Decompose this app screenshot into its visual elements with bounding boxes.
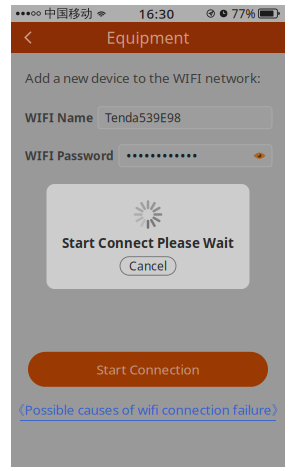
- staticText: 《Possible causes of wifi connection fail…: [11, 401, 284, 419]
- button[interactable]: Cancel: [120, 257, 176, 275]
- staticText: 77%: [231, 5, 255, 21]
- button[interactable]: Start Connection: [11, 352, 285, 387]
- button[interactable]: 《Possible causes of wifi connection fail…: [11, 387, 284, 421]
- staticText: WIFI Name: [25, 110, 93, 126]
- staticText: Cancel: [129, 258, 167, 274]
- button[interactable]: Back: [11, 22, 46, 53]
- staticText: 中国移动: [44, 6, 92, 21]
- staticText: WIFI Password: [25, 148, 114, 164]
- staticText: Tenda539E98: [105, 110, 181, 126]
- staticText: ••••••••••••: [126, 146, 198, 165]
- staticText: Add a new device to the WIFI network:: [25, 69, 261, 87]
- staticText: 16:30: [138, 5, 174, 22]
- button[interactable]: Show password: [253, 151, 266, 160]
- staticText: Start Connect Please Wait: [62, 234, 234, 252]
- staticText: Equipment: [106, 27, 189, 48]
- staticText: Start Connection: [96, 360, 199, 378]
